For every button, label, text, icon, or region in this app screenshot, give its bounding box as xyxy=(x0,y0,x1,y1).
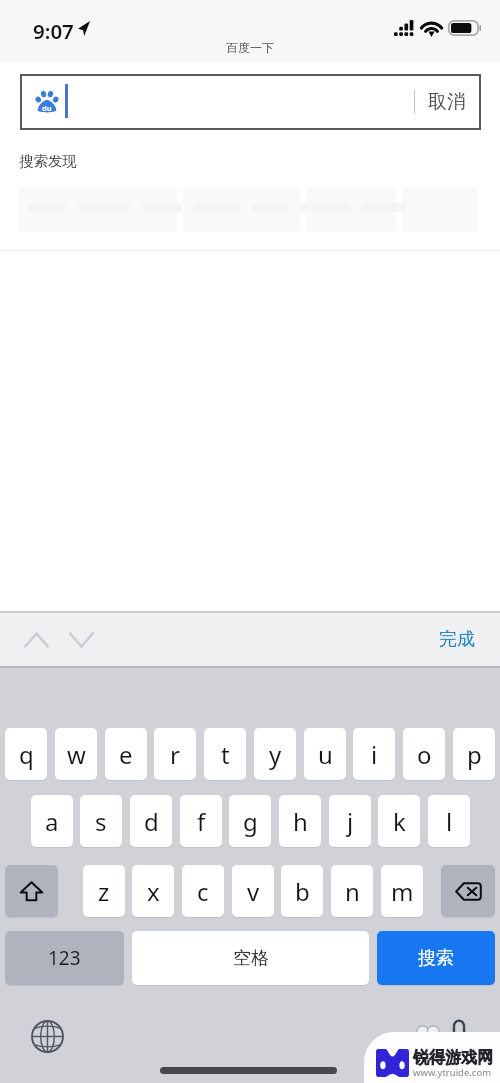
button[interactable]: 搜索 xyxy=(377,931,495,985)
staticText: 123 xyxy=(48,945,81,971)
staticText: du xyxy=(42,103,52,113)
staticText: a xyxy=(45,805,59,838)
staticText: z xyxy=(98,875,110,908)
staticText: v xyxy=(247,875,260,908)
button[interactable]: s xyxy=(80,795,122,847)
button[interactable]: y xyxy=(254,728,296,780)
staticText: 完成 xyxy=(439,628,475,651)
button[interactable]: k xyxy=(378,795,420,847)
button[interactable]: u xyxy=(304,728,346,780)
staticText: e xyxy=(119,738,133,771)
staticText: m xyxy=(391,875,414,908)
button[interactable]: t xyxy=(204,728,246,780)
button[interactable]: p xyxy=(453,728,495,780)
button[interactable]: q xyxy=(5,728,47,780)
staticText: x xyxy=(147,875,160,908)
staticText: k xyxy=(393,805,406,838)
button[interactable]: Change keyboard xyxy=(25,1014,69,1058)
staticText: q xyxy=(19,738,34,771)
staticText: 锐得游戏网 xyxy=(413,1048,493,1068)
staticText: w xyxy=(67,738,86,771)
staticText: 搜索 xyxy=(418,947,454,970)
button[interactable]: b xyxy=(281,865,323,917)
staticText: p xyxy=(467,738,482,771)
button[interactable]: c xyxy=(182,865,224,917)
staticText: f xyxy=(197,805,206,838)
staticText: t xyxy=(221,738,230,771)
staticText: u xyxy=(318,738,333,771)
button[interactable]: e xyxy=(105,728,147,780)
staticText: l xyxy=(446,805,453,838)
staticText: i xyxy=(371,738,378,771)
button[interactable]: a xyxy=(31,795,73,847)
staticText: b xyxy=(295,875,310,908)
staticText: o xyxy=(417,738,432,771)
staticText: g xyxy=(243,805,258,838)
button[interactable]: l xyxy=(428,795,470,847)
staticText: c xyxy=(197,875,209,908)
staticText: 9:07 xyxy=(33,17,74,45)
staticText: j xyxy=(347,805,354,838)
button[interactable]: w xyxy=(55,728,97,780)
staticText: y xyxy=(269,738,282,771)
button[interactable]: 123 xyxy=(5,931,124,985)
button[interactable]: v xyxy=(232,865,274,917)
staticText: 取消 xyxy=(428,90,466,114)
button[interactable]: m xyxy=(381,865,423,917)
button[interactable]: 取消 xyxy=(414,74,481,130)
button[interactable]: x xyxy=(132,865,174,917)
button[interactable]: g xyxy=(229,795,271,847)
button[interactable]: i xyxy=(353,728,395,780)
staticText: www.ytruide.com xyxy=(413,1066,492,1079)
staticText: 空格 xyxy=(233,947,269,970)
button[interactable]: h xyxy=(279,795,321,847)
button[interactable]: Search input xyxy=(20,74,412,130)
button[interactable]: n xyxy=(331,865,373,917)
staticText: h xyxy=(293,805,308,838)
button[interactable]: d xyxy=(130,795,172,847)
button[interactable]: o xyxy=(403,728,445,780)
button[interactable]: j xyxy=(329,795,371,847)
staticText: n xyxy=(345,875,360,908)
button[interactable]: Next field xyxy=(59,618,104,661)
button[interactable]: Shift xyxy=(5,865,58,917)
button[interactable]: Previous field xyxy=(14,618,59,661)
staticText: 搜索发现 xyxy=(19,152,77,170)
button[interactable]: f xyxy=(180,795,222,847)
button[interactable]: 空格 xyxy=(132,931,369,985)
staticText: r xyxy=(170,738,180,771)
button[interactable]: 完成 xyxy=(417,613,500,666)
button[interactable]: r xyxy=(154,728,196,780)
staticText: d xyxy=(144,805,159,838)
button[interactable]: Backspace xyxy=(441,865,495,917)
button[interactable]: z xyxy=(83,865,125,917)
staticText: 百度一下 xyxy=(0,40,500,55)
staticText: s xyxy=(95,805,107,838)
